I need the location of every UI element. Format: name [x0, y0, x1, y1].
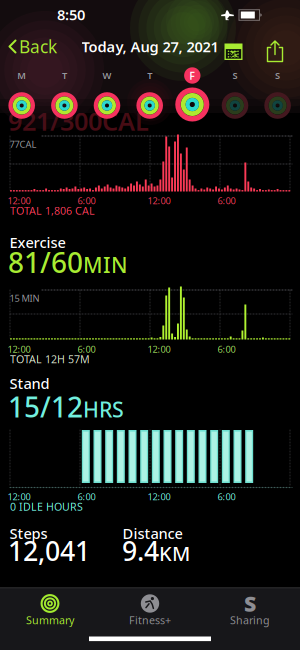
button[interactable]: S [0, 0, 300, 650]
staticText: HRS [83, 395, 124, 423]
button[interactable]: T [0, 0, 300, 650]
staticText: TOTAL 1,806 CAL [10, 203, 95, 218]
button[interactable]: F [0, 0, 300, 650]
button[interactable]: S [0, 0, 300, 650]
staticText: 6:00 [77, 343, 95, 355]
staticText: TOTAL 12H 57M [10, 352, 90, 366]
button[interactable]: W [0, 0, 300, 650]
staticText: 12:00 [7, 343, 30, 355]
staticText: Summary [26, 613, 74, 627]
staticText: S [244, 589, 256, 618]
staticText: 6:00 [217, 343, 235, 355]
staticText: 6:00 [217, 194, 235, 207]
staticText: S [232, 69, 237, 82]
button[interactable]: M [0, 0, 300, 650]
staticText: 6:00 [77, 490, 95, 503]
staticText: 9.4 [122, 533, 159, 568]
staticText: Distance [122, 523, 182, 543]
staticText: 12,041 [8, 533, 90, 568]
staticText: 6:00 [77, 194, 95, 207]
button[interactable]: Fitness+ [0, 0, 300, 650]
button[interactable] [0, 0, 300, 650]
staticText: 12:00 [7, 194, 30, 207]
staticText: F [189, 68, 195, 83]
button[interactable]: Back [0, 0, 300, 650]
staticText: 12:00 [7, 490, 30, 503]
staticText: W [102, 69, 111, 82]
staticText: 12:00 [147, 194, 170, 207]
staticText: 12:00 [147, 490, 170, 503]
staticText: Exercise [9, 232, 65, 252]
staticText: Back [19, 35, 57, 58]
button[interactable]: S [0, 0, 300, 650]
staticText: Stand [9, 373, 49, 393]
staticText: Today, Aug 27, 2021 [81, 37, 218, 56]
staticText: 8:50 [57, 5, 85, 24]
staticText: T [147, 69, 152, 82]
button[interactable]: T [0, 0, 300, 650]
staticText: 15 MIN [9, 292, 39, 304]
button[interactable] [0, 0, 300, 650]
staticText: S [275, 69, 280, 82]
staticText: 81/60 [8, 243, 83, 281]
staticText: 6:00 [217, 490, 235, 503]
staticText: M [17, 69, 26, 82]
staticText: 12:00 [147, 343, 170, 355]
staticText: Fitness+ [129, 613, 171, 627]
staticText: 15/12 [8, 388, 83, 425]
staticText: Sharing [230, 613, 270, 627]
staticText: Steps [9, 523, 47, 543]
staticText: KM [159, 540, 190, 567]
staticText: T [62, 69, 67, 82]
staticText: 0 IDLE HOURS [10, 499, 83, 514]
button[interactable]: Summary [0, 0, 300, 650]
staticText: 77CAL [9, 138, 36, 150]
staticText: 921/300CAL [8, 104, 149, 138]
staticText: MIN [83, 250, 128, 279]
